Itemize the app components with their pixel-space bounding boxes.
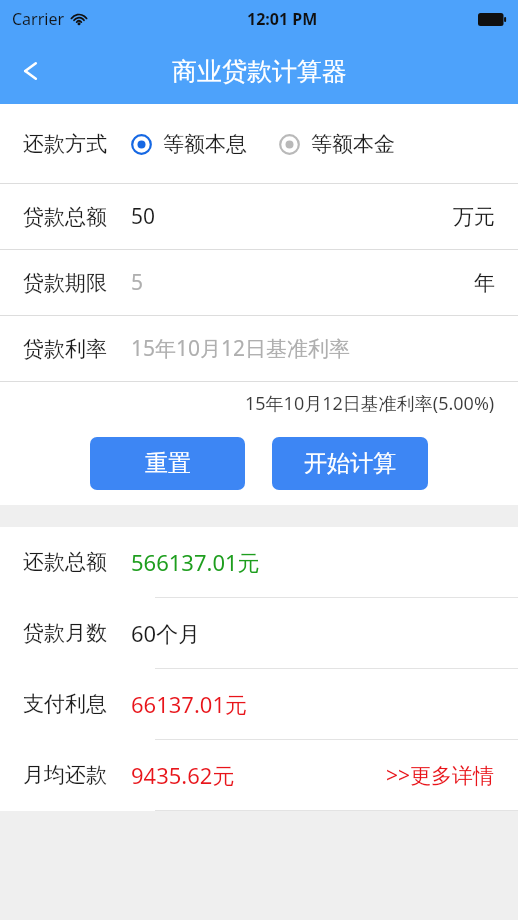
staticText: 12:01 PM: [247, 8, 318, 30]
staticText: 重置: [145, 449, 191, 478]
staticText: 商业贷款计算器: [172, 56, 347, 87]
staticText: 贷款期限: [23, 270, 107, 296]
staticText: 66137.01元: [131, 689, 247, 719]
staticText: 50: [131, 202, 156, 231]
staticText: 15年10月12日基准利率: [131, 334, 351, 363]
staticText: Carrier: [12, 8, 65, 30]
staticText: 等额本金: [311, 131, 395, 157]
staticText: 月均还款: [23, 762, 107, 788]
button[interactable]: 开始计算: [272, 437, 428, 490]
button[interactable]: >>更多详情: [386, 761, 495, 790]
staticText: 5: [131, 268, 144, 297]
staticText: 566137.01元: [131, 547, 260, 577]
button[interactable]: 支付利息: [0, 669, 518, 739]
button[interactable]: 还款总额: [0, 527, 518, 597]
staticText: 等额本息: [163, 131, 247, 157]
button[interactable]: Back: [0, 38, 62, 104]
staticText: 9435.62元: [131, 760, 235, 790]
staticText: 贷款利率: [23, 336, 107, 362]
staticText: 60个月: [131, 618, 201, 648]
button[interactable]: 等额本息: [131, 131, 247, 157]
button[interactable]: 还款方式: [0, 104, 518, 183]
button[interactable]: 月均还款: [0, 740, 518, 810]
staticText: 贷款总额: [23, 204, 107, 230]
staticText: 年: [474, 270, 495, 296]
staticText: 万元: [453, 204, 495, 230]
button[interactable]: 贷款月数: [0, 598, 518, 668]
button[interactable]: 重置: [90, 437, 245, 490]
staticText: 支付利息: [23, 691, 107, 717]
staticText: 开始计算: [304, 449, 396, 478]
button[interactable]: 贷款利率: [0, 316, 518, 381]
button[interactable]: 贷款期限: [0, 250, 518, 315]
staticText: 贷款月数: [23, 620, 107, 646]
staticText: 15年10月12日基准利率(5.00%): [245, 391, 495, 416]
button[interactable]: 等额本金: [279, 131, 395, 157]
staticText: 还款总额: [23, 549, 107, 575]
staticText: >>更多详情: [386, 761, 495, 790]
button[interactable]: 贷款总额: [0, 184, 518, 249]
staticText: 还款方式: [23, 131, 107, 157]
